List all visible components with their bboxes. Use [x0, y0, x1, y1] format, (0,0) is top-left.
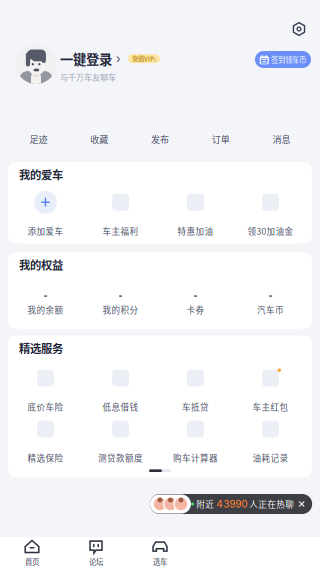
staticText: 收藏: [90, 132, 108, 145]
button[interactable]: 首页: [0, 537, 64, 569]
staticText: 一键登录: [60, 49, 112, 68]
button[interactable]: 签到领车币: [255, 51, 311, 68]
staticText: 论坛: [89, 556, 103, 567]
button[interactable]: -: [83, 283, 158, 319]
staticText: 汽车币: [257, 304, 284, 316]
staticText: 与千万车友聊车: [60, 71, 116, 83]
button[interactable]: 选车: [128, 537, 192, 569]
staticText: 购车计算器: [173, 452, 218, 464]
staticText: 选车: [153, 556, 167, 567]
button[interactable]: 车主福利: [83, 190, 158, 237]
button[interactable]: -: [8, 283, 83, 319]
button[interactable]: 测贷款额度: [83, 417, 158, 464]
button[interactable]: 附近: [150, 494, 312, 514]
staticText: 添加爱车: [27, 225, 63, 237]
staticText: 我的余额: [27, 304, 63, 316]
staticText: 订单: [212, 132, 230, 145]
staticText: 消息: [273, 132, 291, 145]
staticText: 低息借钱: [102, 401, 138, 413]
staticText: ›: [116, 51, 121, 66]
staticText: 我的爱车: [19, 166, 63, 182]
staticText: 精选保险: [27, 452, 63, 464]
button[interactable]: 特惠加油: [158, 190, 233, 237]
staticText: 特惠加油: [177, 225, 213, 237]
staticText: 43990: [216, 498, 247, 510]
button[interactable]: 精选保险: [8, 417, 83, 464]
button[interactable]: 油耗记录: [233, 417, 308, 464]
button[interactable]: 购车计算器: [158, 417, 233, 464]
staticText: 卡券: [186, 304, 204, 316]
button[interactable]: 添加爱车: [8, 190, 83, 237]
staticText: 我的积分: [102, 304, 138, 316]
button[interactable]: 低息借钱: [83, 366, 158, 413]
button[interactable]: 收藏: [69, 124, 130, 154]
button[interactable]: 论坛: [64, 537, 128, 569]
staticText: -: [118, 287, 122, 302]
button[interactable]: 消息: [251, 124, 312, 154]
staticText: 人正在热聊: [249, 498, 294, 510]
staticText: 车主红包: [252, 401, 288, 413]
button[interactable]: 足迹: [8, 124, 69, 154]
staticText: 足迹: [29, 132, 47, 145]
staticText: 油耗记录: [252, 452, 288, 464]
staticText: 充值VIP›: [132, 54, 156, 63]
staticText: 测贷款额度: [98, 452, 143, 464]
staticText: 精选服务: [19, 340, 63, 356]
staticText: 发布: [151, 132, 169, 145]
staticText: 签到领车币: [271, 54, 306, 65]
staticText: -: [193, 287, 197, 302]
staticText: 领30加油金: [247, 225, 293, 237]
button[interactable]: 车主红包: [233, 366, 308, 413]
button[interactable]: -: [158, 283, 233, 319]
staticText: 附近: [196, 498, 214, 510]
staticText: -: [43, 287, 47, 302]
staticText: 我的权益: [19, 256, 63, 273]
button[interactable]: 领30加油金: [233, 190, 308, 237]
staticText: 底价车险: [27, 401, 63, 413]
button[interactable]: 设置: [292, 22, 306, 36]
button[interactable]: -: [233, 283, 308, 319]
staticText: 首页: [25, 556, 39, 567]
button[interactable]: 发布: [130, 124, 190, 154]
staticText: 车主福利: [102, 225, 138, 237]
staticText: 车抵贷: [182, 401, 209, 413]
staticText: -: [268, 287, 272, 302]
button[interactable]: 车抵贷: [158, 366, 233, 413]
button[interactable]: 充值VIP›: [128, 54, 160, 63]
button[interactable]: 底价车险: [8, 366, 83, 413]
button[interactable]: 订单: [190, 124, 251, 154]
